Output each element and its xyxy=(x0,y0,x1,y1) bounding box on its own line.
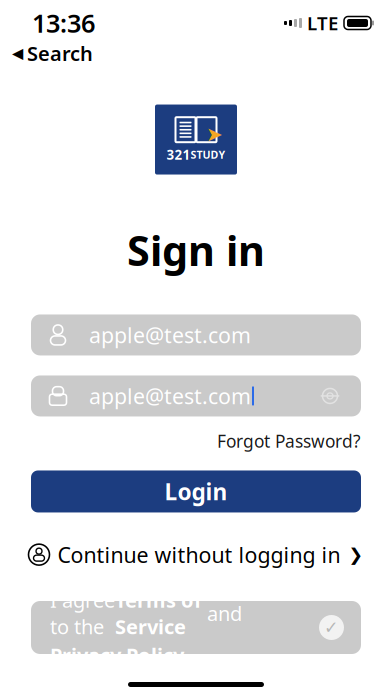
staticText: Continue without logging in xyxy=(57,540,340,569)
staticText: Privacy Policy xyxy=(50,642,184,668)
button[interactable]: Forgot Password? xyxy=(217,426,361,455)
staticText: apple@test.com xyxy=(89,321,251,349)
staticText: LTE xyxy=(307,11,338,35)
staticText: Terms of Service xyxy=(115,587,202,640)
staticText: Search xyxy=(27,40,93,67)
button[interactable]: ◀ xyxy=(0,38,93,69)
staticText: I agree to the xyxy=(50,587,115,640)
button[interactable]: I agree to the xyxy=(31,601,361,654)
button[interactable]: Login xyxy=(31,470,361,512)
staticText: apple@test.com xyxy=(89,382,251,410)
staticText: ➤ xyxy=(206,123,223,146)
staticText: Login xyxy=(164,476,227,506)
staticText: STUDY xyxy=(190,147,225,162)
staticText: Sign in xyxy=(127,223,265,277)
staticText: 321 xyxy=(166,146,190,163)
staticText: 13:36 xyxy=(32,6,95,40)
button[interactable]: apple@test.com xyxy=(31,375,361,416)
button[interactable]: Continue without logging in xyxy=(18,534,373,575)
staticText: ✓ xyxy=(324,618,339,637)
staticText: and xyxy=(202,600,242,626)
staticText: Forgot Password? xyxy=(217,429,361,452)
button[interactable]: apple@test.com xyxy=(31,314,361,355)
staticText: ◀ xyxy=(12,45,23,62)
staticText: ❯ xyxy=(348,545,363,564)
staticText: . xyxy=(184,642,189,668)
